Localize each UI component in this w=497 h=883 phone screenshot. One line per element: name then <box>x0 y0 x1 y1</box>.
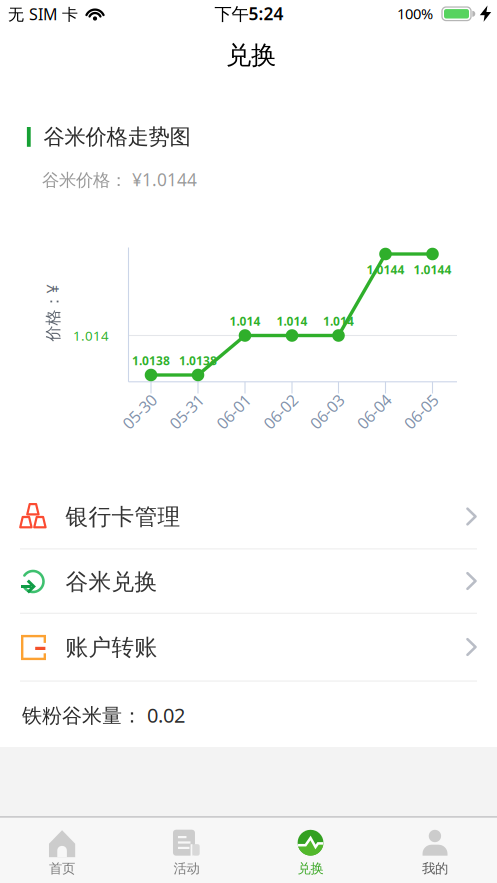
staticText: 价格：¥ <box>24 302 81 324</box>
staticText: 1.014 <box>229 313 260 329</box>
staticText: 06-04 <box>353 401 394 422</box>
staticText: 首页 <box>49 860 75 877</box>
staticText: 银行卡管理 <box>65 503 180 531</box>
staticText: 06-05 <box>400 401 441 422</box>
staticText: 06-03 <box>306 401 347 422</box>
staticText: 铁粉谷米量： 0.02 <box>22 702 185 728</box>
button[interactable]: 银行卡管理 <box>0 484 497 548</box>
staticText: 下午5:24 <box>214 2 283 25</box>
button[interactable]: 兑换 <box>248 817 373 883</box>
staticText: 无 SIM 卡 <box>8 3 78 25</box>
button[interactable]: 活动 <box>124 817 248 883</box>
staticText: 1.014 <box>73 327 109 344</box>
button[interactable]: 账户转账 <box>0 614 497 680</box>
staticText: 谷米价格： ¥1.0144 <box>42 168 197 191</box>
staticText: 1.014 <box>323 313 354 329</box>
staticText: 05-31 <box>166 401 207 422</box>
staticText: 1.0138 <box>132 352 170 368</box>
staticText: 兑换 <box>297 860 323 877</box>
staticText: 谷米兑换 <box>65 568 157 596</box>
button[interactable]: 首页 <box>0 817 124 883</box>
staticText: 谷米价格走势图 <box>43 124 190 150</box>
staticText: 05-30 <box>119 401 160 422</box>
staticText: 06-02 <box>260 401 301 422</box>
staticText: 1.0144 <box>366 261 404 277</box>
staticText: 06-01 <box>213 401 254 422</box>
staticText: 兑换 <box>226 40 276 71</box>
button[interactable]: 我的 <box>373 817 497 883</box>
staticText: 1.014 <box>276 313 307 329</box>
staticText: 1.0144 <box>413 261 451 277</box>
staticText: 我的 <box>422 860 448 877</box>
staticText: 账户转账 <box>65 634 157 661</box>
staticText: 1.0138 <box>179 352 217 368</box>
staticText: 活动 <box>173 860 199 877</box>
button[interactable]: 谷米兑换 <box>0 549 497 613</box>
staticText: 100% <box>397 4 433 23</box>
